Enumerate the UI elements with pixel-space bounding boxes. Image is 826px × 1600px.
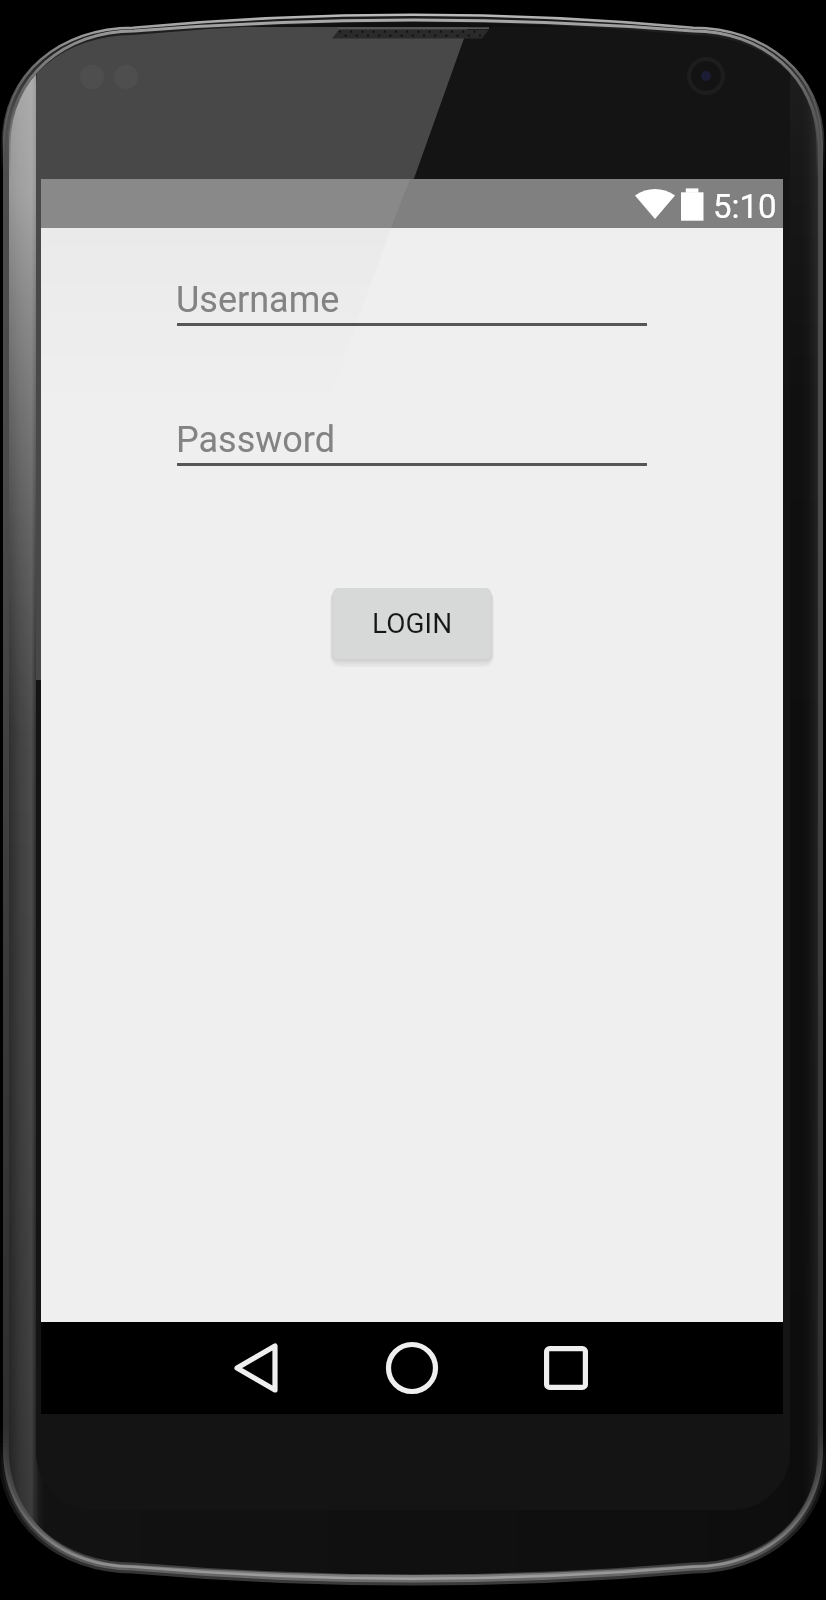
staticText: Password (176, 419, 336, 461)
staticText: LOGIN (372, 607, 453, 640)
button[interactable]: Recent apps (531, 1333, 601, 1403)
staticText: Username (176, 279, 340, 321)
button[interactable]: LOGIN (333, 588, 491, 659)
button[interactable]: Home (377, 1333, 447, 1403)
button[interactable]: Back (221, 1333, 291, 1403)
staticText: 5:10 (713, 187, 777, 226)
